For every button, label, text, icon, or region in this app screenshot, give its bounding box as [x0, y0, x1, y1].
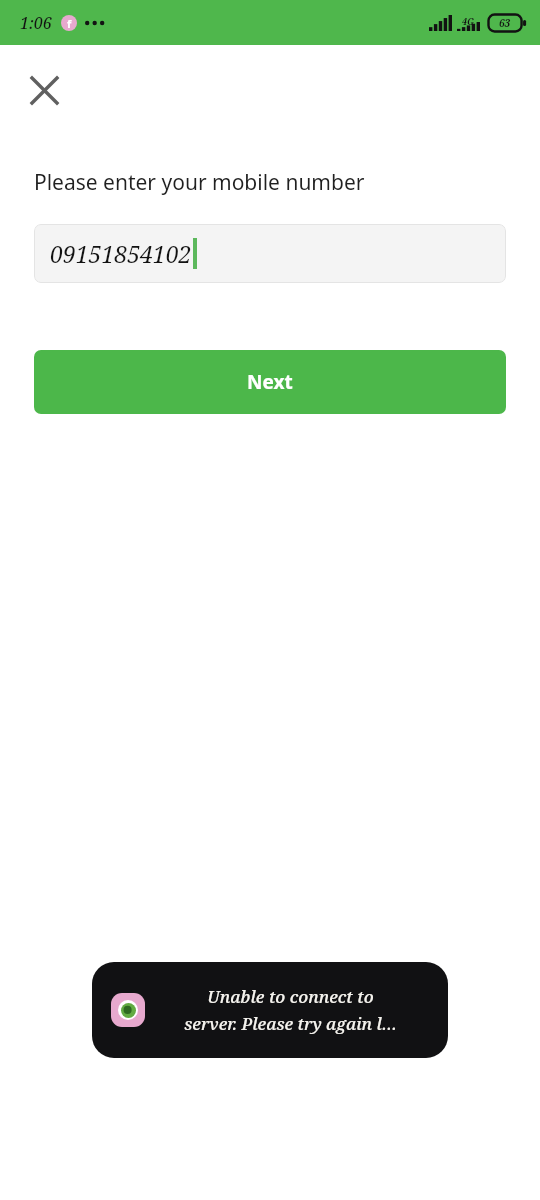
- staticText: f: [67, 16, 72, 31]
- button[interactable]: Close: [18, 64, 70, 116]
- staticText: 09151854102: [50, 238, 192, 269]
- staticText: Please enter your mobile number: [34, 168, 365, 197]
- staticText: 4G: [462, 15, 475, 27]
- button[interactable]: 09151854102: [34, 224, 506, 283]
- staticText: Next: [247, 369, 293, 395]
- staticText: 1:06: [20, 12, 52, 34]
- staticText: Unable to connect to server. Please try …: [184, 985, 397, 1035]
- staticText: 63: [499, 16, 511, 30]
- button[interactable]: Unable to connect to server. Please try …: [92, 962, 448, 1058]
- button[interactable]: Next: [34, 350, 506, 414]
